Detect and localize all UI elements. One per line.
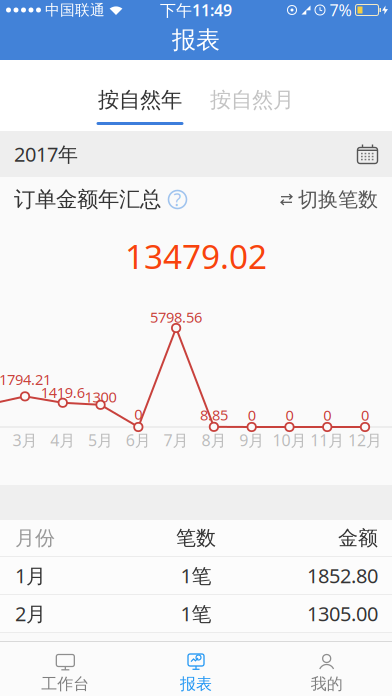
button[interactable]: 按自然年 (95, 89, 185, 111)
staticText: 0 (361, 405, 369, 425)
button[interactable]: 我的 (261, 642, 392, 696)
staticText: 11月 (310, 429, 344, 451)
staticText: 3月 (12, 429, 37, 451)
staticText: 1305.00 (307, 600, 378, 627)
staticText: 金额 (338, 526, 378, 550)
staticText: 6月 (126, 429, 151, 451)
staticText: 1300 (85, 387, 117, 407)
button[interactable]: 帮助 (167, 189, 188, 210)
button[interactable]: 切换笔数 (280, 187, 378, 212)
staticText: 9月 (239, 429, 264, 451)
button[interactable]: 报表 (131, 642, 261, 696)
staticText: 2月 (15, 600, 46, 627)
button[interactable]: 2017年 (0, 131, 392, 177)
staticText: 5月 (88, 429, 113, 451)
staticText: 工作台 (41, 674, 89, 694)
staticText: 7% (329, 0, 351, 21)
staticText: 0 (248, 405, 256, 425)
staticText: 2017年 (14, 141, 78, 167)
staticText: 1794.21 (0, 370, 51, 389)
staticText: 我的 (311, 674, 343, 694)
staticText: 按自然月 (210, 87, 294, 113)
staticText: 报表 (172, 25, 220, 55)
staticText: 0 (134, 404, 142, 424)
staticText: 13479.02 (125, 234, 267, 278)
button[interactable]: 工作台 (0, 642, 131, 696)
staticText: 1笔 (180, 600, 211, 627)
staticText: 1419.6 (41, 382, 85, 402)
staticText: 按自然年 (98, 87, 182, 113)
staticText: 中国联通 (45, 1, 105, 19)
staticText: 8.85 (200, 405, 228, 425)
staticText: 5798.56 (150, 307, 202, 327)
staticText: 0 (323, 405, 331, 425)
staticText: 7月 (164, 429, 189, 451)
staticText: 0 (285, 405, 293, 425)
staticText: 订单金额年汇总 (14, 186, 161, 213)
staticText: ? (173, 188, 181, 211)
staticText: 8月 (201, 429, 226, 451)
button[interactable]: 按自然月 (207, 89, 297, 111)
staticText: 1月 (15, 562, 46, 589)
staticText: 笔数 (176, 526, 216, 550)
staticText: 下午11:49 (160, 0, 232, 21)
staticText: 10月 (272, 429, 306, 451)
staticText: 切换笔数 (298, 187, 378, 212)
staticText: 1笔 (180, 562, 211, 589)
staticText: 报表 (180, 674, 212, 694)
staticText: 月份 (15, 526, 55, 550)
staticText: 4月 (50, 429, 75, 451)
staticText: 1852.80 (307, 562, 378, 589)
staticText: 12月 (348, 429, 382, 451)
